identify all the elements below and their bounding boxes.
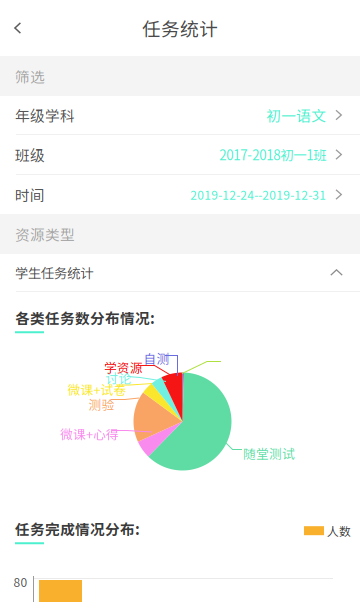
button[interactable]: Back [0, 11, 37, 45]
staticText: 时间 [15, 184, 45, 205]
staticText: 自测 [143, 349, 169, 367]
staticText: 任务完成情况分布: [15, 518, 140, 539]
staticText: 讨论 [105, 368, 131, 387]
staticText: 资源类型 [15, 223, 75, 245]
button[interactable]: 时间 [0, 175, 360, 214]
staticText: 年级学科 [15, 104, 75, 126]
staticText: 筛选 [15, 65, 45, 87]
staticText: 80 [13, 573, 27, 590]
staticText: 任务统计 [142, 14, 218, 41]
button[interactable]: 班级 [0, 135, 360, 175]
staticText: 微课+心得 [60, 424, 119, 443]
staticText: 随堂测试 [243, 444, 295, 462]
button[interactable]: 学生任务统计 [0, 254, 360, 292]
staticText: 人数 [327, 522, 351, 539]
staticText: 微课+试卷 [67, 380, 126, 398]
staticText: 学资源 [104, 358, 143, 376]
staticText: 学生任务统计 [15, 263, 93, 282]
staticText: 班级 [15, 144, 45, 165]
staticText: 2019-12-24--2019-12-31 [190, 186, 326, 203]
button[interactable]: 年级学科 [0, 96, 360, 135]
staticText: 各类任务数分布情况: [15, 307, 155, 328]
staticText: 测验 [88, 395, 114, 413]
staticText: 初一语文 [266, 104, 326, 126]
staticText: 2017-2018初一1班 [219, 145, 326, 164]
